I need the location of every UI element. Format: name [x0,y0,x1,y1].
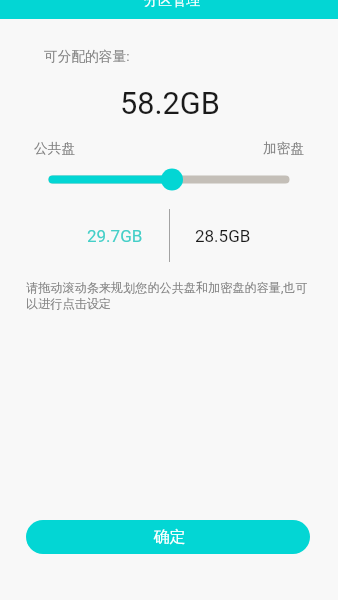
button[interactable]: 29.7GB [61,209,169,262]
staticText: 28.5GB [195,226,251,246]
button[interactable]: 确定 [26,520,310,554]
staticText: 可分配的容量: [44,48,130,65]
staticText: 公共盘 [34,140,76,157]
staticText: 分区管理 [144,0,200,10]
staticText: 58.2GB [120,86,220,122]
staticText: 加密盘 [263,140,305,157]
staticText: 确定 [154,527,186,547]
staticText: 请拖动滚动条来规划您的公共盘和加密盘的容量,也可以进行点击设定 [26,280,312,312]
button[interactable]: Adjust public / encrypted disk split [0,165,338,195]
staticText: 29.7GB [87,226,143,246]
button[interactable]: 28.5GB [169,209,277,262]
